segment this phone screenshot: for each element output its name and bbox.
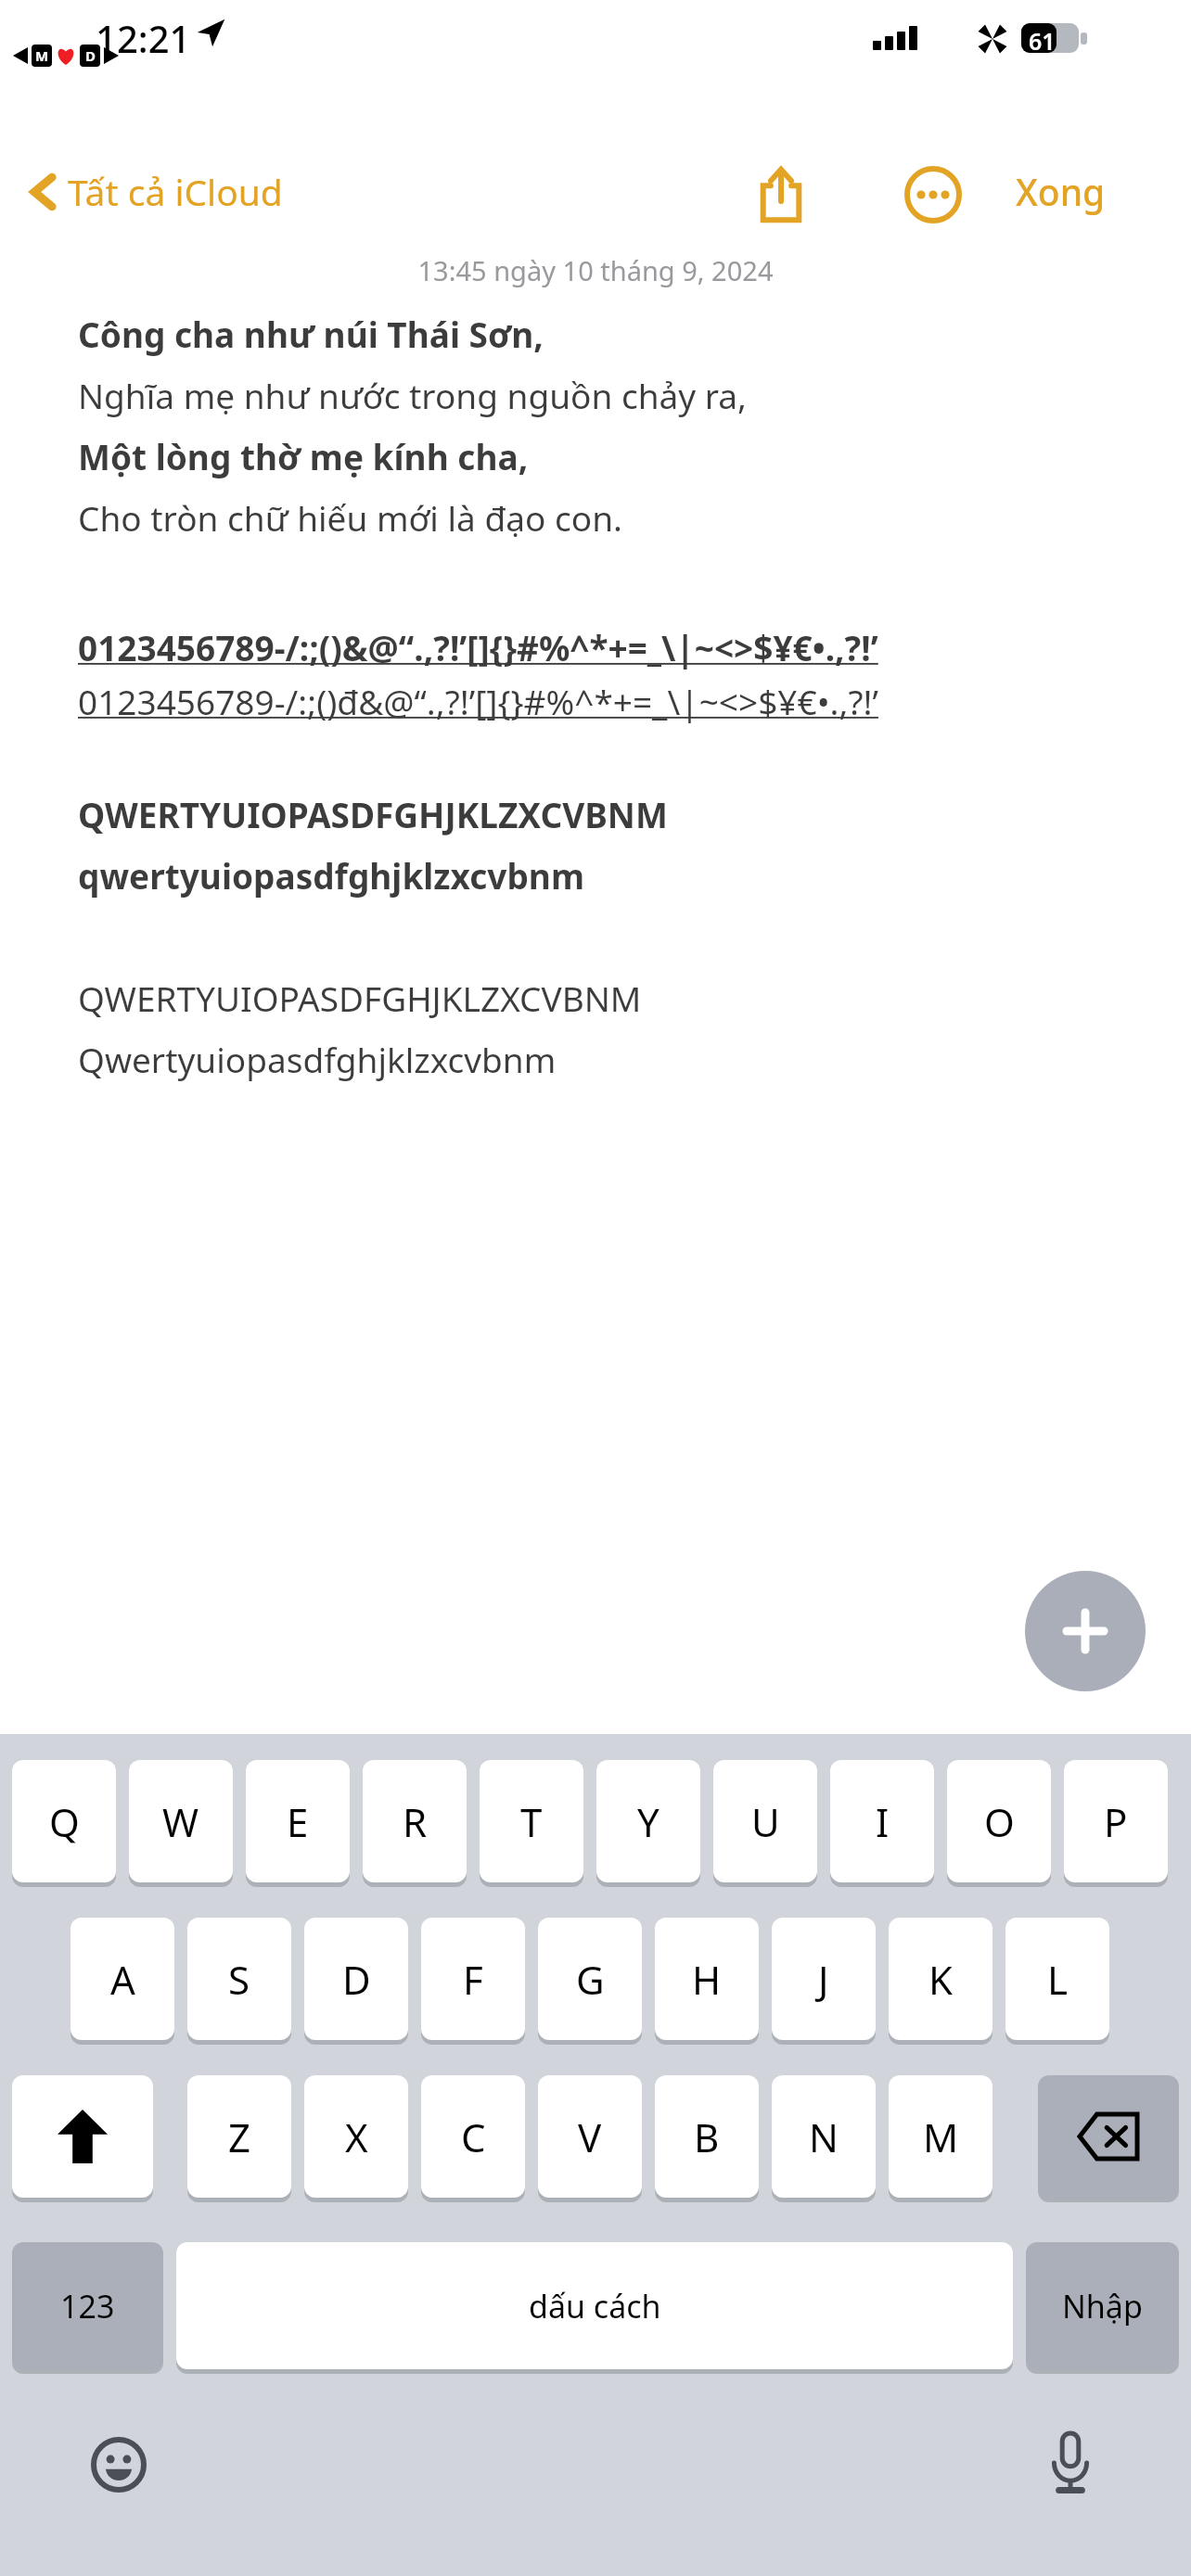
button[interactable]: Tất cả iCloud	[22, 159, 292, 223]
button[interactable]: Q	[12, 1760, 116, 1882]
button[interactable]: H	[655, 1918, 759, 2040]
staticText: H	[692, 1953, 722, 2006]
staticText: K	[928, 1953, 953, 2006]
staticText: Tất cả iCloud	[68, 167, 283, 216]
button[interactable]: F	[421, 1918, 525, 2040]
button[interactable]: W	[129, 1760, 233, 1882]
staticText: Nhập	[1062, 2285, 1143, 2327]
button[interactable]: Thêm	[898, 159, 968, 230]
button[interactable]: A	[70, 1918, 174, 2040]
staticText: F	[463, 1953, 483, 2006]
staticText: Cho tròn chữ hiếu mới là đạo con.	[78, 494, 622, 541]
button[interactable]: Thêm mục	[1025, 1571, 1146, 1691]
staticText: V	[578, 2111, 602, 2163]
button[interactable]: T	[480, 1760, 583, 1882]
staticText: R	[403, 1795, 428, 1848]
staticText: T	[520, 1795, 543, 1848]
staticText: W	[162, 1795, 199, 1848]
staticText: QWERTYUIOPASDFGHJKLZXCVBNM	[78, 975, 642, 1021]
button[interactable]: dấu cách	[176, 2242, 1013, 2369]
button[interactable]: O	[947, 1760, 1051, 1882]
button[interactable]: L	[1005, 1918, 1109, 2040]
button[interactable]: N	[772, 2075, 876, 2198]
staticText: J	[818, 1953, 829, 2006]
staticText: dấu cách	[529, 2285, 661, 2327]
staticText: I	[876, 1795, 890, 1848]
staticText: X	[345, 2111, 368, 2163]
staticText: D	[85, 46, 96, 65]
staticText: C	[461, 2111, 486, 2163]
button[interactable]: U	[713, 1760, 817, 1882]
button[interactable]: G	[538, 1918, 642, 2040]
staticText: L	[1047, 1953, 1069, 2006]
button[interactable]: V	[538, 2075, 642, 2198]
button[interactable]: E	[246, 1760, 350, 1882]
button[interactable]: M	[889, 2075, 992, 2198]
staticText: D	[342, 1953, 371, 2006]
staticText: M	[923, 2111, 959, 2163]
button[interactable]: B	[655, 2075, 759, 2198]
staticText: QWERTYUIOPASDFGHJKLZXCVBNM	[78, 791, 668, 837]
staticText: Qwertyuiopasdfghjklzxcvbnm	[78, 1036, 557, 1082]
button[interactable]: Xong	[1006, 159, 1115, 223]
staticText: U	[751, 1795, 780, 1848]
button[interactable]: S	[187, 1918, 291, 2040]
button[interactable]: Nhập	[1026, 2242, 1179, 2369]
staticText: Z	[228, 2111, 251, 2163]
button[interactable]: D	[304, 1918, 408, 2040]
button[interactable]: C	[421, 2075, 525, 2198]
staticText: B	[694, 2111, 720, 2163]
staticText: E	[287, 1795, 309, 1848]
button[interactable]: Y	[596, 1760, 700, 1882]
staticText: A	[110, 1953, 135, 2006]
staticText: P	[1104, 1795, 1128, 1848]
staticText: 13:45 ngày 10 tháng 9, 2024	[0, 252, 1191, 288]
button[interactable]: Đọc chính tả	[1028, 2420, 1113, 2506]
button[interactable]: K	[889, 1918, 992, 2040]
button[interactable]: Biểu tượng cảm xúc	[76, 2422, 161, 2507]
button[interactable]: I	[830, 1760, 934, 1882]
staticText: qwertyuiopasdfghjklzxcvbnm	[78, 852, 584, 899]
staticText: O	[984, 1795, 1015, 1848]
staticText: 0123456789-/:;()đ&@“.,?!’[]{}#%^*+=_\|~<…	[78, 678, 878, 724]
staticText: Q	[49, 1795, 80, 1848]
staticText: 12:21	[96, 13, 191, 63]
staticText: 0123456789-/:;()&@“.,?!’[]{}#%^*+=_\|~<>…	[78, 624, 878, 670]
staticText: G	[576, 1953, 605, 2006]
button[interactable]: Xóa	[1038, 2075, 1179, 2198]
staticText: Công cha như núi Thái Sơn,	[78, 311, 544, 357]
button[interactable]: Z	[187, 2075, 291, 2198]
button[interactable]: 123	[12, 2242, 163, 2369]
button[interactable]: Chia sẻ	[747, 156, 815, 234]
staticText: Nghĩa mẹ như nước trong nguồn chảy ra,	[78, 372, 747, 418]
staticText: Một lòng thờ mẹ kính cha,	[78, 433, 529, 479]
staticText: N	[809, 2111, 839, 2163]
staticText: S	[228, 1953, 250, 2006]
staticText: M	[35, 46, 49, 65]
button[interactable]: X	[304, 2075, 408, 2198]
button[interactable]: J	[772, 1918, 876, 2040]
button[interactable]: P	[1064, 1760, 1168, 1882]
staticText: Xong	[1016, 167, 1106, 216]
staticText: Y	[637, 1795, 660, 1848]
button[interactable]: R	[363, 1760, 467, 1882]
button[interactable]: Shift	[12, 2075, 153, 2198]
staticText: 123	[60, 2285, 115, 2327]
staticText: 61	[1029, 25, 1056, 57]
